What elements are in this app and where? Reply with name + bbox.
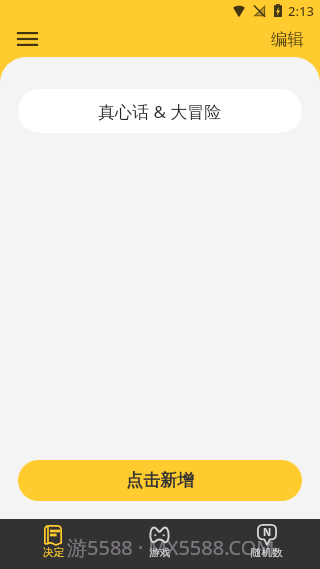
- button[interactable]: 真心话 & 大冒险: [18, 89, 302, 133]
- staticText: 真心话 & 大冒险: [98, 100, 222, 123]
- staticText: N: [263, 525, 272, 539]
- staticText: 游戏: [149, 546, 170, 559]
- button[interactable]: 点击新增: [18, 460, 302, 501]
- button[interactable]: 游戏: [106, 519, 213, 569]
- staticText: 决定: [43, 546, 64, 559]
- staticText: 编辑: [271, 29, 304, 50]
- button[interactable]: Menu: [10, 22, 44, 56]
- button[interactable]: N: [213, 519, 320, 569]
- button[interactable]: 编辑: [255, 23, 320, 56]
- staticText: 点击新增: [126, 470, 194, 491]
- staticText: 游5588 · MX5588.COM: [67, 534, 275, 561]
- staticText: 2:13: [288, 2, 314, 20]
- staticText: 随机数: [251, 546, 283, 559]
- button[interactable]: 决定: [0, 519, 106, 569]
